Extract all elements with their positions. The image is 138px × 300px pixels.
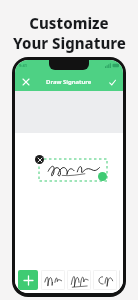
button[interactable]: Resize signature xyxy=(98,172,107,181)
button[interactable]: Signature 3 xyxy=(93,270,117,290)
button[interactable]: Delete signature xyxy=(35,155,44,164)
button[interactable]: Signature 2 xyxy=(67,270,91,290)
button[interactable]: Done xyxy=(106,76,118,88)
staticText: Draw Signature xyxy=(46,78,92,86)
staticText: Your Signature xyxy=(13,33,126,53)
button[interactable]: Close xyxy=(20,76,32,88)
button[interactable]: More signatures xyxy=(119,270,120,290)
staticText: Customize xyxy=(29,13,109,33)
staticText: 9:41 xyxy=(19,63,27,68)
button[interactable]: Add signature xyxy=(18,270,38,290)
button[interactable]: Signature 1 xyxy=(41,270,65,290)
